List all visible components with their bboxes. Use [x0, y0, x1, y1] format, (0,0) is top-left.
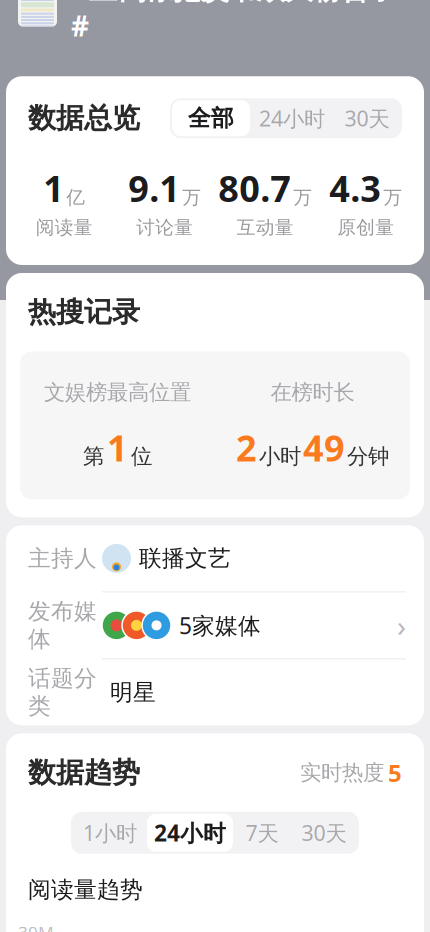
staticText: 分钟 [347, 443, 389, 469]
staticText: 1 [43, 164, 64, 212]
staticText: 49 [303, 424, 345, 471]
staticText: #王鹤棣把虞书欣大粉告了# [71, 0, 397, 44]
button[interactable]: 7天 [233, 814, 291, 852]
button[interactable]: 24小时 [147, 814, 233, 852]
staticText: 互动量 [237, 216, 294, 239]
staticText: 热搜记录 [28, 295, 140, 329]
staticText: 阅读量趋势 [28, 876, 143, 904]
staticText: 在榜时长 [270, 379, 354, 406]
button[interactable]: 30天 [291, 814, 357, 852]
staticText: 实时热度 [300, 759, 384, 786]
staticText: 万 [182, 186, 201, 209]
button[interactable]: 发布媒体 [6, 592, 424, 658]
staticText: 全部 [188, 104, 234, 132]
button[interactable]: 24小时 [250, 100, 334, 136]
staticText: 数据趋势 [28, 755, 140, 790]
staticText: 原创量 [337, 216, 394, 239]
staticText: 9.1 [128, 164, 180, 212]
staticText: 第 [83, 443, 104, 469]
staticText: › [397, 606, 406, 645]
staticText: 万 [383, 186, 402, 209]
staticText: 1小时 [83, 819, 137, 847]
staticText: 7天 [245, 819, 278, 847]
staticText: 万 [293, 186, 312, 209]
staticText: 阅读量 [36, 216, 93, 239]
staticText: 80.7 [218, 164, 291, 212]
staticText: 24小时 [259, 104, 325, 132]
staticText: 2 [236, 424, 257, 471]
staticText: 数据总览 [28, 101, 140, 135]
staticText: 4.3 [329, 164, 381, 212]
staticText: 30天 [301, 819, 346, 847]
staticText: 小时 [259, 443, 301, 469]
staticText: 亿 [66, 186, 85, 209]
staticText: 24小时 [154, 818, 226, 848]
button[interactable]: 30天 [334, 100, 400, 136]
staticText: 话题分类 [28, 664, 97, 720]
staticText: 联播文艺 [139, 544, 231, 572]
button[interactable]: 全部 [172, 100, 250, 136]
staticText: 39M [18, 922, 54, 932]
button[interactable]: 1小时 [73, 814, 147, 852]
staticText: 5 [388, 757, 402, 788]
staticText: 明星 [110, 678, 156, 706]
staticText: 30天 [344, 104, 389, 132]
staticText: 位 [131, 443, 152, 469]
staticText: 5家媒体 [179, 610, 261, 640]
staticText: 1 [107, 424, 128, 471]
staticText: 讨论量 [136, 216, 193, 239]
staticText: 文娱榜最高位置 [44, 379, 191, 406]
staticText: 主持人 [28, 544, 97, 572]
staticText: 发布媒体 [28, 597, 97, 653]
